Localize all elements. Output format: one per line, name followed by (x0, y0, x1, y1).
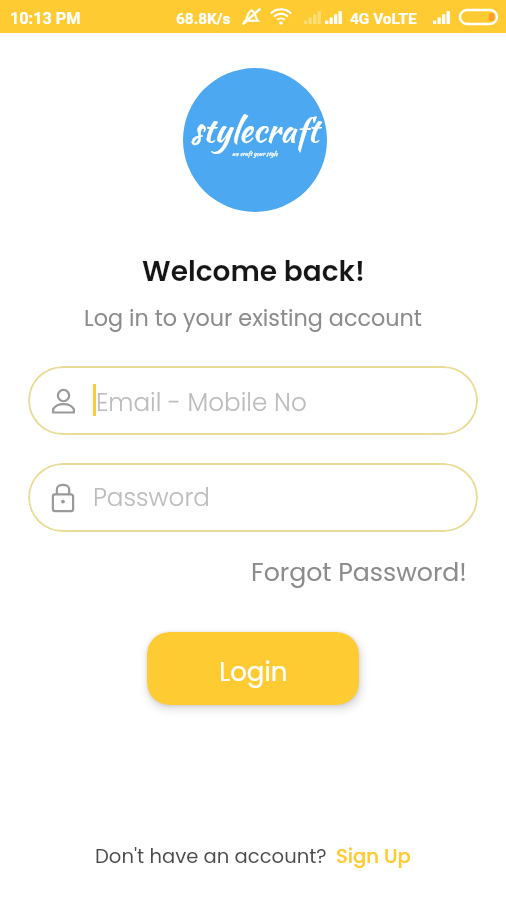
staticText: Welcome back! (142, 252, 365, 291)
button[interactable]: Password (28, 463, 478, 532)
staticText: Log in to your existing account (84, 303, 422, 334)
button[interactable]: Email - Mobile No (28, 366, 478, 435)
other: Stylecraft logo (183, 68, 327, 212)
staticText: Sign Up (336, 842, 411, 869)
staticText: stylecraft (191, 106, 319, 155)
staticText: we craft your style (232, 149, 278, 158)
staticText: Forgot Password! (251, 555, 467, 590)
staticText: Don't have an account? (95, 842, 327, 869)
staticText: Login (219, 654, 288, 690)
staticText: Password (93, 480, 210, 514)
button[interactable]: Login (147, 632, 359, 705)
staticText: 4G VoLTE (350, 10, 417, 28)
button[interactable]: Forgot Password! (245, 551, 473, 594)
staticText: Email - Mobile No (96, 385, 307, 419)
staticText: 10:13 PM (10, 9, 81, 28)
staticText: 68.8K/s (176, 10, 231, 28)
button[interactable]: Sign Up (336, 842, 411, 869)
